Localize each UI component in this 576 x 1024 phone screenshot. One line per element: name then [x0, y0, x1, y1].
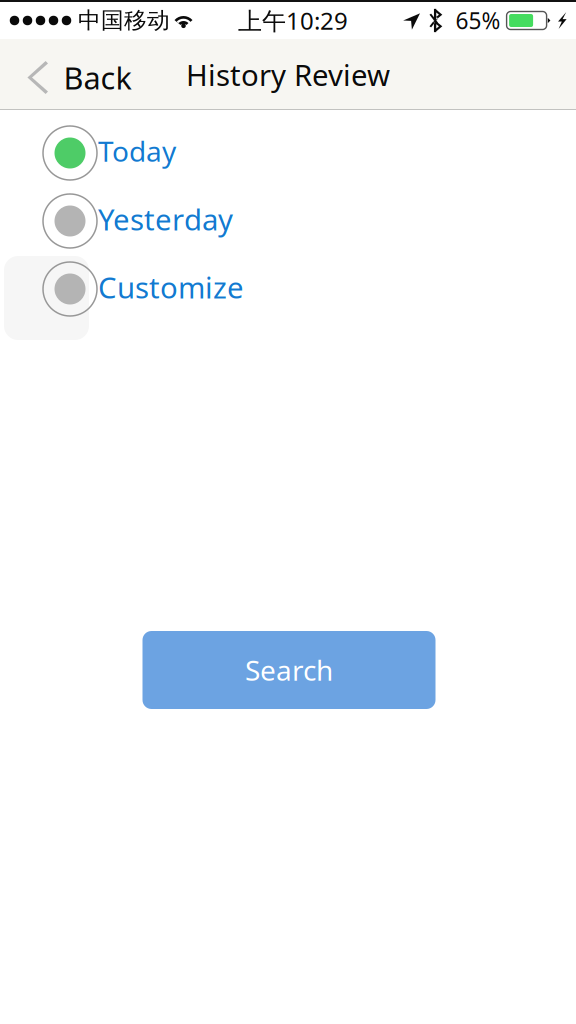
button[interactable]: Today	[0, 119, 576, 187]
staticText: History Review	[186, 55, 390, 94]
staticText: 上午10:29	[238, 5, 348, 36]
staticText: Back	[63, 57, 131, 98]
button[interactable]: Yesterday	[0, 187, 576, 255]
staticText: 65%	[456, 5, 501, 35]
staticText: Search	[245, 651, 333, 689]
button[interactable]: Back	[0, 39, 145, 110]
button[interactable]: Search	[141, 631, 434, 709]
button[interactable]: Customize	[0, 255, 576, 323]
staticText: Yesterday	[98, 199, 233, 238]
staticText: Today	[98, 132, 176, 170]
staticText: 中国移动	[78, 7, 170, 34]
staticText: Customize	[98, 267, 244, 306]
